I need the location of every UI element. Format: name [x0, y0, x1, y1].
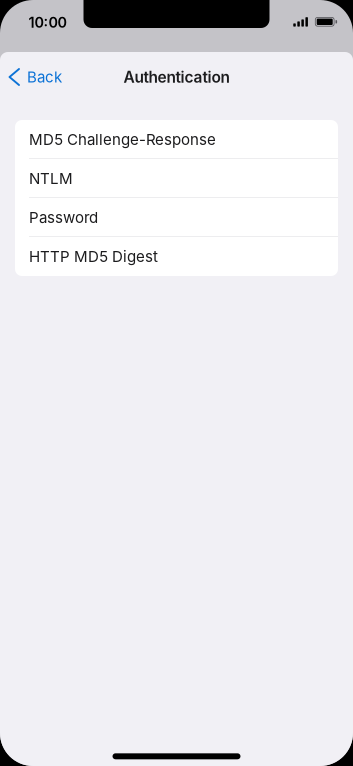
button[interactable]: HTTP MD5 Digest	[15, 237, 338, 276]
staticText: Back	[27, 68, 62, 86]
staticText: Password	[29, 208, 98, 227]
button[interactable]: MD5 Challenge-Response	[15, 120, 338, 159]
staticText: MD5 Challenge-Response	[29, 130, 216, 149]
staticText: 10:00	[28, 14, 66, 31]
staticText: HTTP MD5 Digest	[29, 247, 158, 266]
staticText: Authentication	[123, 68, 229, 86]
button[interactable]: Back	[0, 52, 92, 102]
button[interactable]: NTLM	[15, 159, 338, 198]
staticText: NTLM	[29, 169, 73, 188]
button[interactable]: Password	[15, 198, 338, 237]
